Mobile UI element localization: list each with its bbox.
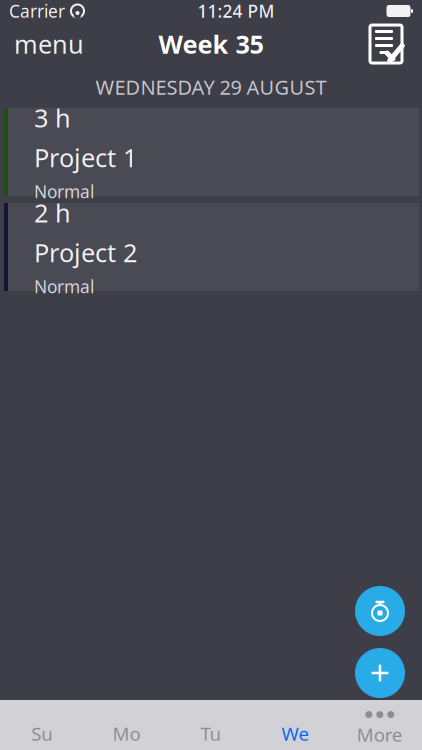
button[interactable]: menu bbox=[0, 22, 98, 66]
staticText: Normal bbox=[34, 275, 94, 298]
staticText: Project 1 bbox=[34, 140, 137, 174]
staticText: 2 h bbox=[34, 196, 71, 229]
staticText: More bbox=[357, 722, 403, 747]
staticText: Mo bbox=[113, 721, 141, 746]
staticText: Carrier bbox=[9, 0, 65, 22]
staticText: Normal bbox=[34, 180, 94, 203]
staticText: Project 2 bbox=[34, 235, 137, 269]
button[interactable]: Tasks bbox=[350, 22, 422, 66]
button[interactable]: Su bbox=[0, 700, 84, 750]
staticText: Tu bbox=[200, 721, 221, 746]
button[interactable]: Tu bbox=[169, 700, 253, 750]
button[interactable]: 2 h bbox=[0, 203, 422, 291]
staticText: 11:24 PM bbox=[197, 0, 274, 22]
button[interactable]: Mo bbox=[84, 700, 169, 750]
staticText: Week 35 bbox=[158, 27, 263, 61]
staticText: 3 h bbox=[34, 101, 71, 134]
staticText: WEDNESDAY 29 AUGUST bbox=[95, 74, 326, 100]
button[interactable]: Start timer bbox=[355, 586, 405, 636]
staticText: We bbox=[281, 721, 309, 746]
staticText: Su bbox=[31, 721, 53, 746]
button[interactable]: More bbox=[338, 700, 422, 750]
button[interactable]: We bbox=[253, 700, 338, 750]
button[interactable]: 3 h bbox=[0, 108, 422, 196]
staticText: menu bbox=[14, 27, 84, 61]
button[interactable]: Add entry bbox=[355, 648, 405, 698]
